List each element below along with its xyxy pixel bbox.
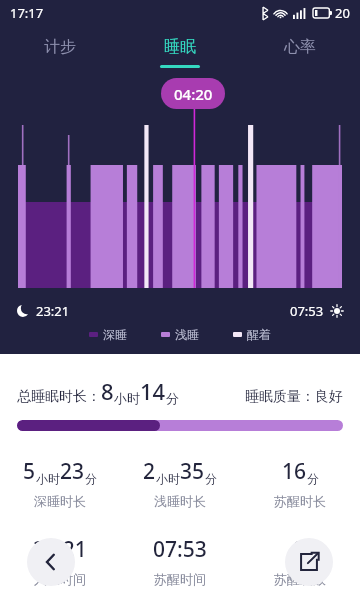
staticText: 3 (294, 535, 307, 564)
staticText: 23:21 (33, 535, 87, 564)
button[interactable]: 5 (0, 457, 120, 509)
staticText: 16 (282, 457, 307, 486)
staticText: 23:21 (36, 302, 70, 320)
staticText: 醒着 (247, 327, 271, 342)
button[interactable]: 睡眠 (120, 26, 240, 68)
staticText: 2 (143, 457, 156, 486)
staticText: 苏醒时间 (154, 571, 206, 587)
staticText: 深睡 (103, 327, 127, 342)
staticText: 23 (60, 457, 85, 486)
staticText: 17:17 (10, 4, 44, 22)
button[interactable]: Back (27, 538, 75, 586)
button[interactable]: 心率 (240, 26, 360, 68)
staticText: 入睡时间 (34, 571, 86, 587)
button[interactable]: 23:21 (0, 535, 120, 587)
button[interactable]: Share (285, 538, 333, 586)
button[interactable]: 计步 (0, 26, 120, 68)
staticText: 计步 (44, 37, 76, 57)
staticText: 8 (101, 376, 114, 406)
button[interactable]: 2 (120, 457, 240, 509)
staticText: 分 (85, 471, 97, 486)
staticText: 浅睡时长 (154, 493, 206, 509)
staticText: 20 (335, 4, 350, 22)
staticText: 07:53 (290, 302, 324, 320)
button[interactable]: 16 (240, 457, 360, 509)
button[interactable]: 04:20 (161, 78, 225, 109)
staticText: 浅睡 (175, 327, 199, 342)
staticText: 分 (166, 390, 179, 406)
button[interactable]: 3 (240, 535, 360, 587)
staticText: 睡眠质量：良好 (245, 388, 343, 406)
staticText: 分 (205, 471, 217, 486)
staticText: 睡眠 (164, 37, 196, 57)
staticText: 5 (23, 457, 36, 486)
staticText: 小时 (36, 471, 60, 486)
staticText: 04:20 (174, 84, 213, 104)
staticText: 深睡时长 (34, 493, 86, 509)
staticText: 35 (180, 457, 205, 486)
staticText: 苏醒时长 (274, 493, 326, 509)
staticText: 小时 (114, 390, 140, 406)
staticText: 分 (307, 471, 319, 486)
button[interactable]: 07:53 (120, 535, 240, 587)
staticText: 心率 (284, 37, 316, 57)
staticText: 总睡眠时长： (17, 388, 101, 406)
staticText: 苏醒次数 (274, 571, 326, 587)
staticText: 小时 (156, 471, 180, 486)
staticText: 07:53 (153, 535, 207, 564)
staticText: 14 (140, 376, 166, 406)
